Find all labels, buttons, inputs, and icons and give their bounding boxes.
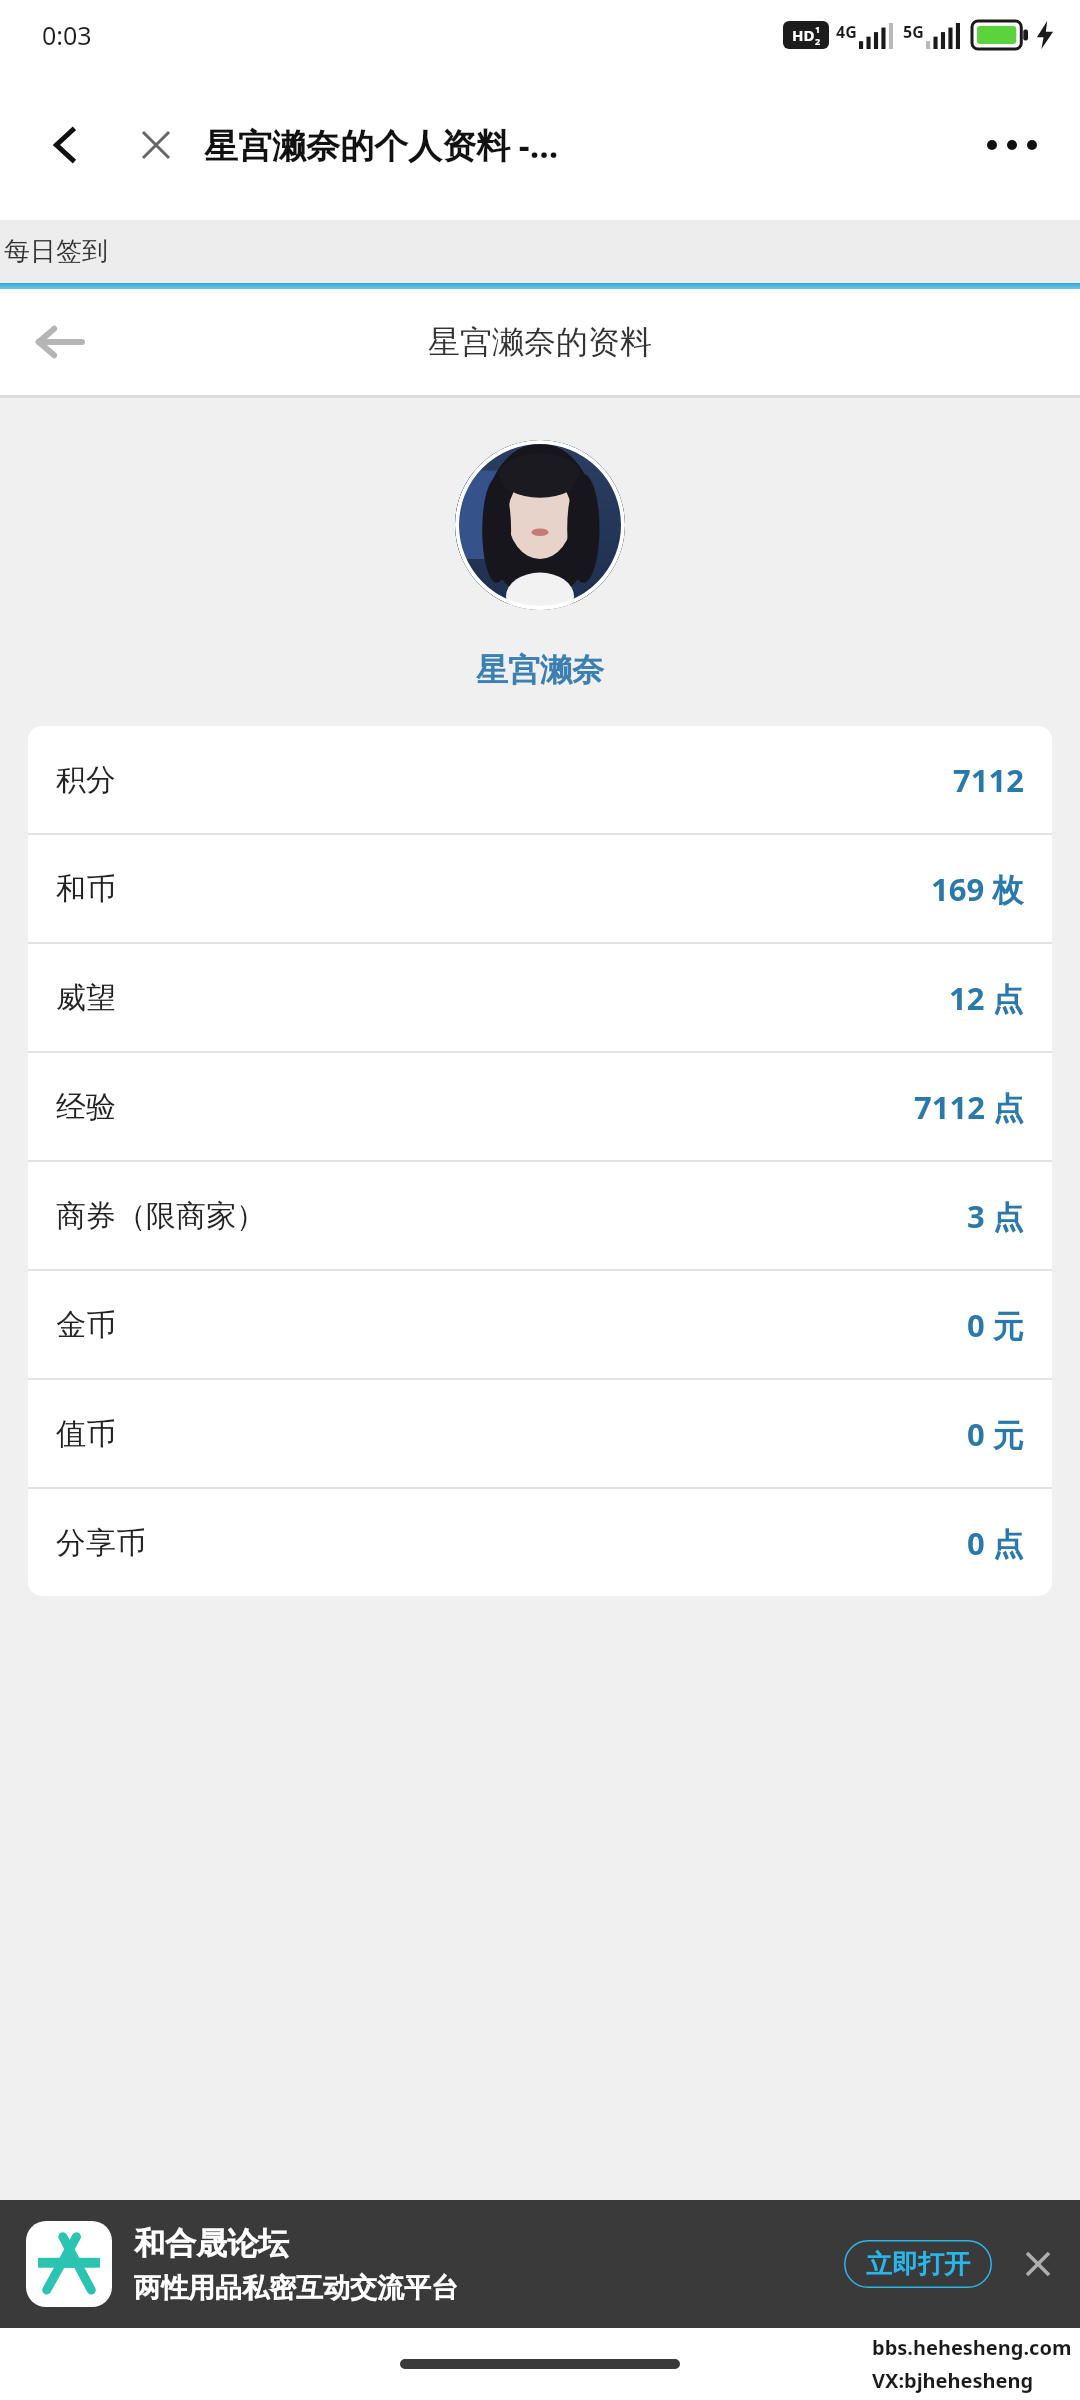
staticText: 威望 xyxy=(56,979,116,1017)
button[interactable]: 威望 xyxy=(28,944,1052,1051)
button[interactable]: 积分 xyxy=(28,726,1052,833)
staticText: 5G xyxy=(903,21,924,43)
button[interactable]: 星宫濑奈 xyxy=(476,650,604,690)
staticText: 积分 xyxy=(56,761,116,799)
button[interactable]: Avatar xyxy=(455,440,625,610)
staticText: 和币 xyxy=(56,870,116,908)
staticText: 3 点 xyxy=(967,1195,1024,1237)
staticText: 2 xyxy=(815,35,821,47)
staticText: 金币 xyxy=(56,1306,116,1344)
staticText: 7112 点 xyxy=(914,1086,1024,1128)
button[interactable]: 每日签到 xyxy=(0,220,1080,283)
staticText: 0 元 xyxy=(967,1413,1024,1455)
button[interactable]: 金币 xyxy=(28,1271,1052,1378)
button[interactable]: 值币 xyxy=(28,1380,1052,1487)
staticText: 商券（限商家） xyxy=(56,1197,266,1235)
staticText: 立即打开 xyxy=(866,2248,970,2281)
button[interactable]: Back xyxy=(30,109,102,181)
staticText: 每日签到 xyxy=(4,235,108,268)
staticText: 分享币 xyxy=(56,1524,146,1562)
button[interactable]: Navigate up xyxy=(20,304,96,380)
staticText: 0 点 xyxy=(967,1522,1024,1564)
button[interactable]: More options xyxy=(974,107,1050,183)
button[interactable]: 分享币 xyxy=(28,1489,1052,1596)
staticText: 12 点 xyxy=(949,977,1024,1019)
staticText: VX:bjhehesheng xyxy=(872,2367,1034,2394)
staticText: 169 枚 xyxy=(931,868,1024,910)
button[interactable]: Close xyxy=(126,115,186,175)
staticText: 值币 xyxy=(56,1415,116,1453)
staticText: 和合晟论坛 xyxy=(134,2224,289,2263)
staticText: bbs.hehesheng.com xyxy=(872,2334,1072,2361)
staticText: 经验 xyxy=(56,1088,116,1126)
staticText: 星宫濑奈的个人资料 -... xyxy=(204,122,559,168)
button[interactable]: 经验 xyxy=(28,1053,1052,1160)
staticText: 4G xyxy=(836,21,857,43)
staticText: 0:03 xyxy=(42,18,92,52)
staticText: HD xyxy=(792,25,815,45)
button[interactable]: Close ad xyxy=(1016,2242,1060,2286)
staticText: 星宫濑奈的资料 xyxy=(428,322,652,362)
staticText: 7112 xyxy=(953,759,1024,801)
staticText: 1 xyxy=(815,23,821,35)
button[interactable]: 商券（限商家） xyxy=(28,1162,1052,1269)
button[interactable]: 和币 xyxy=(28,835,1052,942)
button[interactable]: 立即打开 xyxy=(844,2240,992,2288)
staticText: 两性用品私密互动交流平台 xyxy=(134,2271,458,2305)
staticText: 0 元 xyxy=(967,1304,1024,1346)
